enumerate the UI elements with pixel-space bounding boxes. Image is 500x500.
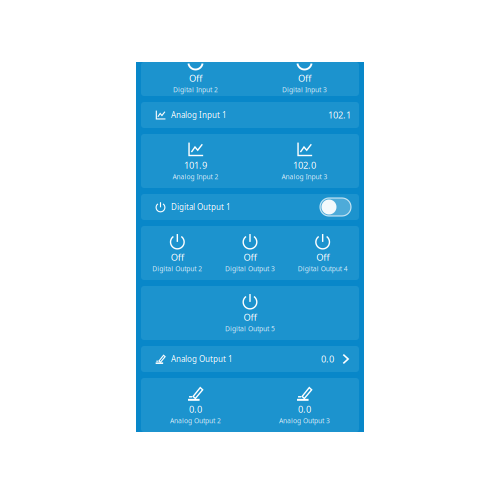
staticText: Digital Input 2 — [173, 85, 218, 94]
staticText: Digital Output 4 — [298, 264, 348, 273]
staticText: Analog Output 2 — [170, 416, 221, 425]
staticText: Off — [171, 251, 184, 263]
staticText: Off — [316, 251, 329, 263]
button[interactable]: Off — [250, 64, 359, 94]
staticText: 0.0 — [321, 353, 334, 365]
staticText: Off — [243, 311, 256, 323]
staticText: Digital Input 3 — [282, 85, 327, 94]
button[interactable]: Analog Input 1 — [141, 102, 359, 128]
button[interactable]: 0.0 — [250, 385, 359, 425]
staticText: 0.0 — [298, 403, 311, 415]
staticText: Analog Output 3 — [279, 416, 330, 425]
staticText: Off — [243, 251, 256, 263]
staticText: Analog Input 2 — [172, 172, 218, 181]
button[interactable]: Off — [141, 64, 250, 94]
staticText: Digital Output 5 — [225, 324, 275, 333]
staticText: Digital Output 3 — [225, 264, 275, 273]
staticText: Off — [189, 72, 202, 84]
button[interactable]: Digital Output 1 — [141, 194, 359, 220]
button[interactable]: Analog Output 1 — [141, 346, 359, 372]
button[interactable]: Off — [141, 233, 214, 273]
staticText: 102.1 — [328, 109, 351, 121]
staticText: 102.0 — [293, 159, 316, 171]
button[interactable]: 0.0 — [141, 385, 250, 425]
button[interactable]: Off — [286, 233, 359, 273]
staticText: 101.9 — [184, 159, 207, 171]
staticText: Analog Input 3 — [281, 172, 327, 181]
button[interactable]: Off — [214, 233, 286, 273]
staticText: Off — [298, 72, 311, 84]
staticText: Digital Output 1 — [171, 202, 231, 212]
button[interactable]: 101.9 — [141, 141, 250, 181]
button[interactable]: Off — [141, 293, 359, 333]
staticText: Digital Output 2 — [152, 264, 202, 273]
staticText: Analog Output 1 — [171, 354, 233, 364]
staticText: Analog Input 1 — [171, 110, 227, 120]
staticText: 0.0 — [189, 403, 202, 415]
button[interactable]: 102.0 — [250, 141, 359, 181]
